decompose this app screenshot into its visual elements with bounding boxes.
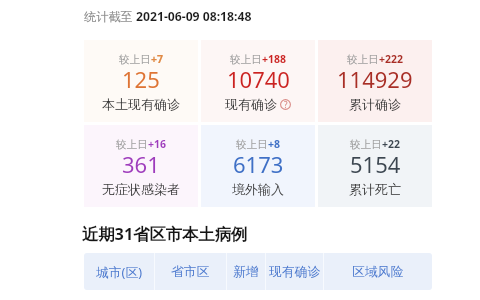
staticText: 累计死亡 — [349, 181, 401, 197]
staticText: 361 — [122, 149, 160, 179]
staticText: 较上日 — [119, 53, 151, 66]
staticText: 现有确诊 — [225, 96, 277, 112]
staticText: +188 — [262, 52, 287, 66]
staticText: +7 — [151, 52, 164, 66]
button[interactable]: 现有确诊说明 — [280, 99, 291, 110]
staticText: 境外输入 — [232, 181, 284, 197]
button[interactable]: 较上日 — [84, 40, 198, 122]
staticText: 本土现有确诊 — [102, 96, 180, 112]
button[interactable]: 现有确诊 — [266, 253, 323, 290]
staticText: 省市区 — [171, 264, 210, 280]
staticText: 较上日 — [116, 138, 148, 151]
staticText: 新增 — [233, 264, 259, 280]
staticText: 5154 — [350, 149, 401, 179]
staticText: 10740 — [227, 64, 290, 94]
staticText: +8 — [268, 137, 281, 151]
staticText: 6173 — [233, 149, 284, 179]
staticText: ? — [284, 99, 288, 110]
staticText: +222 — [379, 52, 404, 66]
button[interactable]: 较上日 — [201, 125, 315, 207]
button[interactable]: 区域风险 — [324, 253, 432, 290]
staticText: 近期31省区市本土病例 — [82, 223, 248, 245]
staticText: 较上日 — [236, 138, 268, 151]
staticText: 较上日 — [350, 138, 382, 151]
button[interactable]: 较上日 — [84, 125, 198, 207]
staticText: 较上日 — [230, 53, 262, 66]
staticText: 统计截至 — [84, 8, 136, 25]
button[interactable]: 较上日 — [318, 125, 432, 207]
staticText: 较上日 — [347, 53, 379, 66]
staticText: 现有确诊 — [269, 264, 321, 280]
button[interactable]: 较上日 — [318, 40, 432, 122]
staticText: 125 — [122, 64, 160, 94]
button[interactable]: 新增 — [227, 253, 265, 290]
staticText: 城市(区) — [96, 263, 143, 280]
button[interactable]: 省市区 — [155, 253, 226, 290]
staticText: +16 — [148, 137, 167, 151]
staticText: 区域风险 — [352, 264, 404, 280]
staticText: +22 — [382, 137, 401, 151]
button[interactable]: 较上日 — [201, 40, 315, 122]
button[interactable]: 城市(区) — [84, 253, 154, 290]
staticText: 2021-06-09 08:18:48 — [136, 8, 252, 25]
staticText: 无症状感染者 — [102, 181, 180, 197]
staticText: 累计确诊 — [349, 96, 401, 112]
staticText: 114929 — [337, 64, 413, 94]
